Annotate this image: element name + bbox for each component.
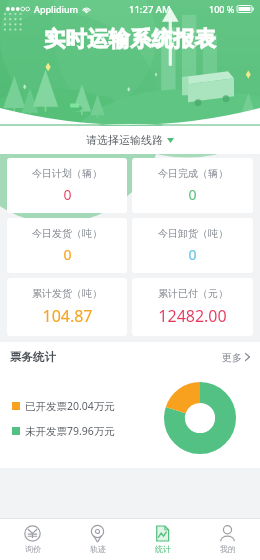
button[interactable]: 今日计划（辆） (7, 158, 127, 213)
staticText: 0 (63, 185, 72, 204)
staticText: 轨迹 (90, 544, 106, 554)
staticText: 累计已付（元） (158, 287, 228, 300)
staticText: 已开发票20.04万元 (25, 399, 115, 413)
staticText: 票务统计 (10, 350, 56, 364)
staticText: 累计发货（吨） (32, 287, 102, 300)
button[interactable]: 今日完成（辆） (132, 158, 253, 213)
staticText: 104.87 (42, 305, 93, 327)
staticText: 0 (188, 185, 197, 204)
staticText: 统计 (155, 544, 171, 554)
button[interactable]: 今日卸货（吨） (132, 218, 253, 273)
staticText: 11:27 AM (129, 3, 171, 16)
staticText: 100 % (209, 3, 235, 15)
staticText: 0 (188, 245, 197, 264)
button[interactable]: 统计 (130, 519, 195, 560)
staticText: 实时运输系统报表 (44, 26, 216, 52)
staticText: 我的 (220, 544, 236, 554)
staticText: 0 (63, 245, 72, 264)
staticText: 今日完成（辆） (158, 167, 228, 180)
button[interactable]: 询价 (0, 519, 65, 560)
staticText: 请选择运输线路 (86, 133, 163, 147)
staticText: 更多 (222, 351, 242, 364)
button[interactable]: 今日发货（吨） (7, 218, 127, 273)
button[interactable]: 请选择运输线路 (0, 126, 260, 154)
staticText: 询价 (25, 544, 41, 554)
staticText: 今日计划（辆） (32, 167, 102, 180)
staticText: Applidium (34, 3, 79, 15)
button[interactable]: 轨迹 (65, 519, 130, 560)
staticText: 未开发票79.96万元 (25, 424, 115, 438)
button[interactable]: 票务统计 (0, 342, 260, 372)
button[interactable]: 我的 (195, 519, 260, 560)
button[interactable]: 累计已付（元） (132, 278, 253, 336)
staticText: 今日卸货（吨） (158, 227, 228, 240)
button[interactable]: 累计发货（吨） (7, 278, 127, 336)
staticText: 12482.00 (158, 305, 227, 327)
staticText: 今日发货（吨） (32, 227, 102, 240)
